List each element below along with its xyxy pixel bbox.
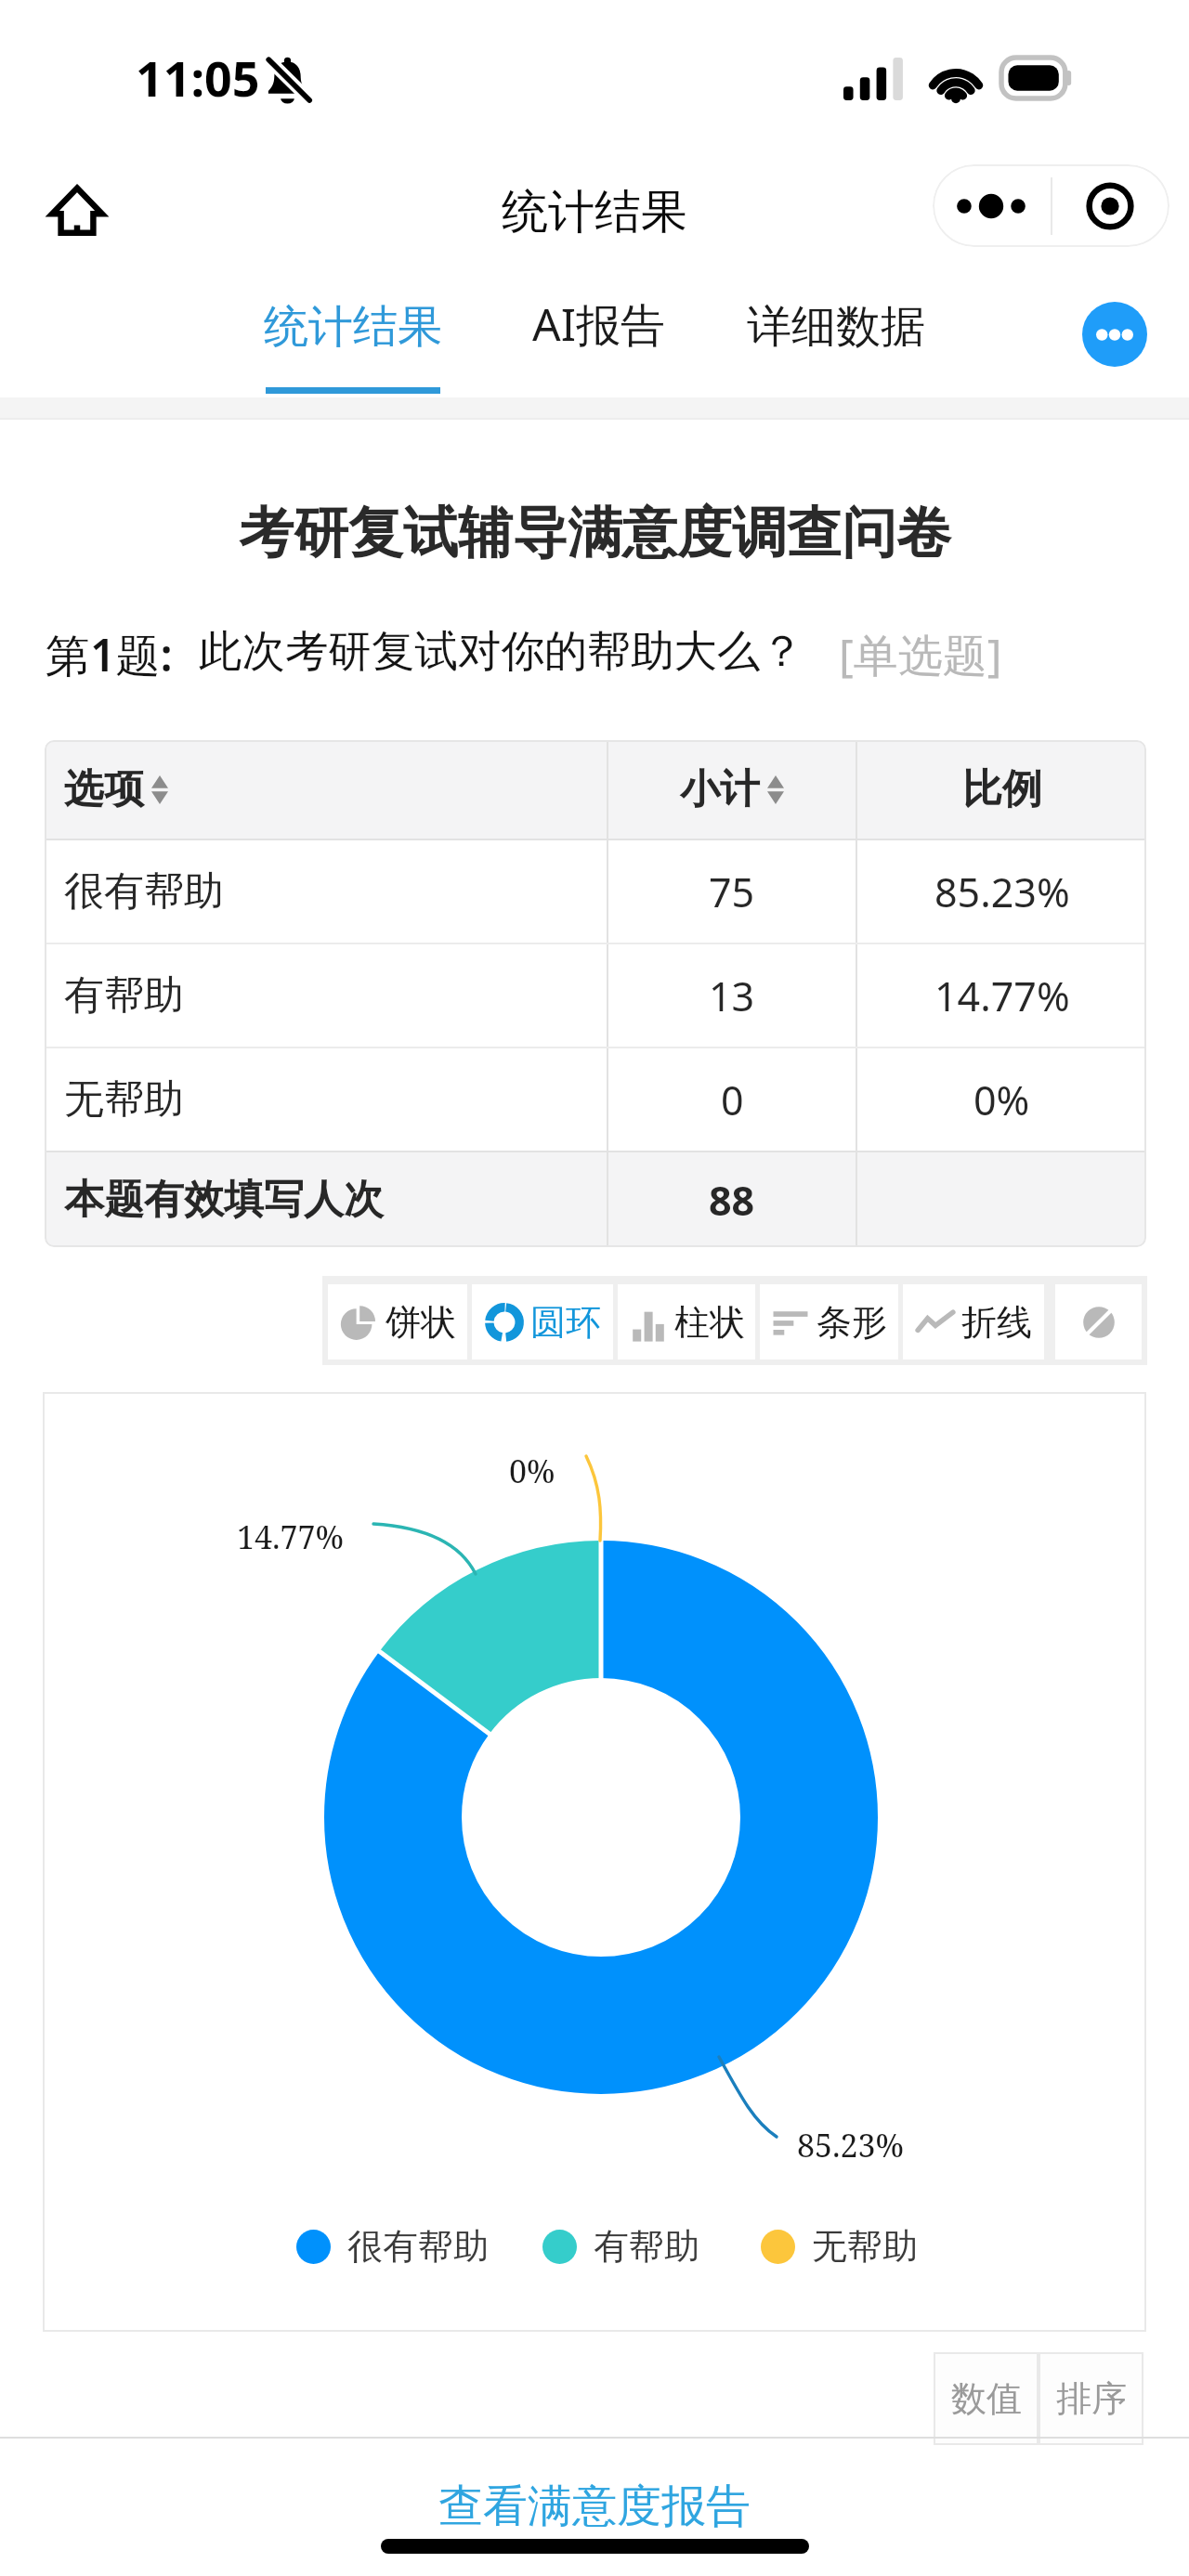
staticText: 有帮助: [64, 970, 184, 1021]
staticText: 柱状: [674, 1300, 745, 1345]
staticText: 比例: [962, 764, 1042, 814]
staticText: 有帮助: [594, 2224, 699, 2269]
staticText: 此次考研复试对你的帮助大么？: [199, 624, 804, 679]
staticText: AI报告: [532, 293, 665, 355]
staticText: 统计结果: [264, 299, 442, 355]
button[interactable]: No chart: [1055, 1284, 1142, 1360]
staticText: 14.77%: [237, 1516, 344, 1558]
staticText: 很有帮助: [347, 2224, 489, 2269]
staticText: 88: [709, 1173, 755, 1228]
staticText: 饼状: [385, 1300, 456, 1345]
staticText: 13: [709, 969, 755, 1023]
button[interactable]: 有帮助: [542, 2224, 699, 2269]
button[interactable]: 统计结果: [261, 299, 445, 397]
button[interactable]: More actions: [1082, 302, 1147, 367]
staticText: 11:05: [136, 45, 260, 111]
button[interactable]: 折线: [903, 1284, 1044, 1360]
staticText: 无帮助: [64, 1074, 184, 1125]
staticText: 很有帮助: [64, 866, 224, 917]
button[interactable]: 选项: [45, 740, 607, 839]
button[interactable]: AI报告: [529, 293, 667, 366]
button[interactable]: 饼状: [328, 1284, 467, 1360]
button[interactable]: 圆环: [472, 1284, 613, 1360]
staticText: 无帮助: [812, 2224, 918, 2269]
button[interactable]: Home: [35, 170, 119, 250]
staticText: 考研复试辅导满意度调查问卷: [239, 499, 951, 567]
button[interactable]: 数值: [934, 2352, 1039, 2445]
staticText: 85.23%: [934, 865, 1070, 919]
staticText: 14.77%: [934, 969, 1070, 1023]
staticText: 0%: [509, 1450, 555, 1492]
button[interactable]: 排序: [1039, 2352, 1143, 2445]
button[interactable]: Close mini program: [1050, 164, 1169, 247]
staticText: 本题有效填写人次: [64, 1175, 384, 1225]
button[interactable]: 详细数据: [745, 299, 927, 371]
button[interactable]: 查看满意度报告: [438, 2478, 751, 2534]
staticText: 折线: [961, 1300, 1032, 1345]
staticText: 统计结果: [502, 183, 687, 241]
staticText: 排序: [1056, 2376, 1127, 2421]
staticText: 75: [709, 865, 755, 919]
button[interactable]: 柱状: [618, 1284, 755, 1360]
staticText: 数值: [951, 2376, 1022, 2421]
button[interactable]: 小计: [608, 740, 856, 839]
staticText: 85.23%: [797, 2124, 904, 2166]
button[interactable]: 很有帮助: [296, 2224, 489, 2269]
button[interactable]: More: [933, 164, 1050, 247]
staticText: 选项: [64, 764, 144, 814]
staticText: 0%: [973, 1073, 1030, 1127]
staticText: 详细数据: [747, 299, 925, 355]
staticText: 0: [721, 1073, 744, 1127]
staticText: 第1题:: [46, 624, 173, 685]
staticText: 小计: [680, 764, 760, 814]
staticText: 查看满意度报告: [438, 2478, 751, 2534]
staticText: 圆环: [530, 1300, 601, 1345]
staticText: [单选题]: [839, 624, 1002, 685]
button[interactable]: 条形: [760, 1284, 898, 1360]
staticText: 条形: [817, 1300, 887, 1345]
button[interactable]: 无帮助: [761, 2224, 918, 2269]
